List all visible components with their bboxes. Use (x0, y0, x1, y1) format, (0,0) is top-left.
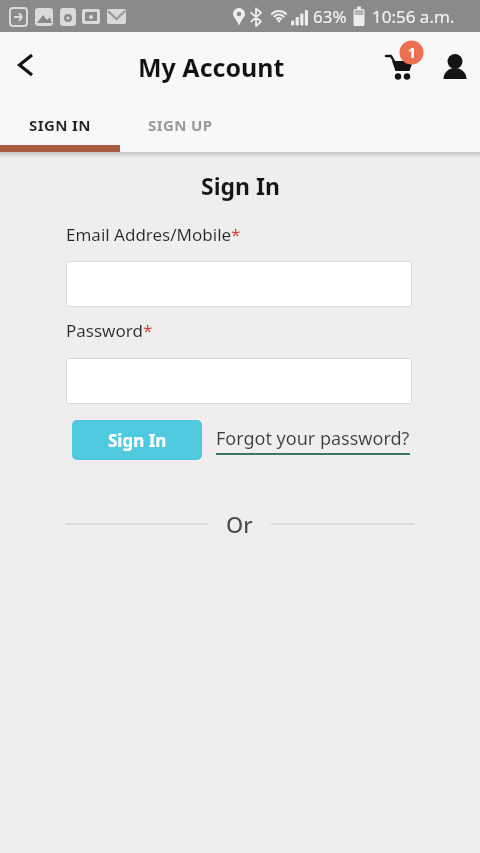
button[interactable]: 1 (374, 32, 428, 98)
button[interactable]: SIGN IN (0, 98, 120, 152)
button[interactable]: SIGN UP (120, 98, 240, 152)
button[interactable]: Sign In (72, 420, 202, 460)
staticText: Or (226, 509, 253, 539)
button[interactable] (430, 32, 480, 98)
staticText: SIGN UP (148, 115, 213, 135)
staticText: Sign In (108, 429, 167, 452)
staticText: SIGN IN (29, 115, 91, 135)
staticText: 1 (408, 43, 417, 62)
button[interactable]: Forgot your password? (216, 426, 410, 455)
button[interactable] (0, 32, 48, 98)
staticText: Email Addres/Mobile* (66, 223, 241, 246)
button[interactable] (66, 261, 412, 307)
staticText: 10:56 a.m. (372, 5, 455, 28)
staticText: Password* (66, 319, 153, 342)
staticText: Sign In (201, 170, 280, 201)
staticText: 63% (313, 5, 347, 28)
staticText: My Account (138, 50, 285, 84)
button[interactable] (66, 358, 412, 404)
staticText: Forgot your password? (216, 426, 410, 451)
